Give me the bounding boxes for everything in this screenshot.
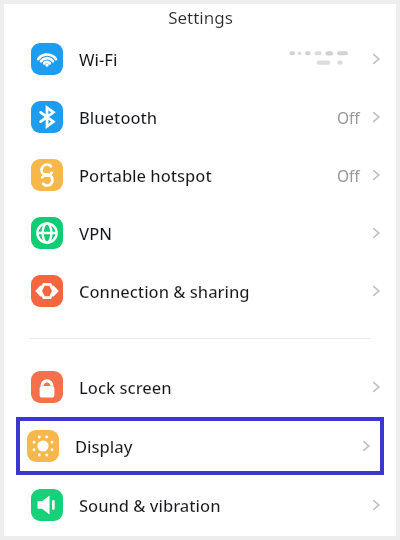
staticText: Wi-Fi bbox=[79, 48, 118, 70]
button[interactable]: Bluetooth bbox=[4, 88, 396, 146]
button[interactable]: Display bbox=[16, 417, 384, 475]
button[interactable]: Connection & sharing bbox=[4, 262, 396, 320]
button[interactable]: Wi-Fi bbox=[4, 30, 396, 88]
button[interactable]: Portable hotspot bbox=[4, 146, 396, 204]
staticText: Off bbox=[337, 107, 360, 128]
staticText: Bluetooth bbox=[79, 106, 158, 128]
staticText: Connection & sharing bbox=[79, 280, 250, 302]
button[interactable]: Sound & vibration bbox=[4, 476, 396, 534]
staticText: Off bbox=[337, 165, 360, 186]
button[interactable]: Lock screen bbox=[4, 358, 396, 416]
staticText: Lock screen bbox=[79, 376, 172, 398]
button[interactable]: VPN bbox=[4, 204, 396, 262]
staticText: Portable hotspot bbox=[79, 164, 212, 186]
staticText: Sound & vibration bbox=[79, 494, 221, 516]
staticText: Settings bbox=[168, 6, 233, 29]
staticText: VPN bbox=[79, 222, 113, 244]
staticText: Display bbox=[75, 435, 133, 457]
